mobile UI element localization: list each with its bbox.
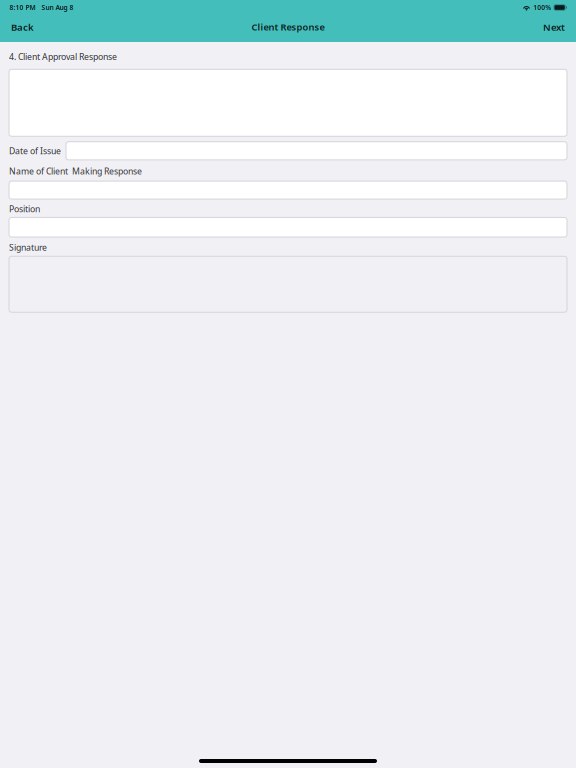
button[interactable] <box>9 217 567 237</box>
button[interactable]: Next <box>532 15 576 42</box>
staticText: Next <box>543 20 565 34</box>
staticText: Sun Aug 8 <box>41 3 73 12</box>
button[interactable] <box>9 256 567 312</box>
button[interactable] <box>9 69 567 136</box>
staticText: Date of Issue <box>9 145 61 157</box>
staticText: Client Response <box>251 21 324 33</box>
staticText: 4. Client Approval Response <box>9 51 117 62</box>
staticText: 8:10 PM <box>9 3 35 12</box>
staticText: Signature <box>9 241 47 253</box>
button[interactable] <box>9 181 567 199</box>
staticText: 100% <box>533 3 551 12</box>
button[interactable] <box>66 142 567 160</box>
button[interactable]: Back <box>0 15 45 42</box>
staticText: Position <box>9 203 40 215</box>
staticText: Back <box>11 20 34 34</box>
staticText: Name of Client Making Response <box>9 165 142 177</box>
